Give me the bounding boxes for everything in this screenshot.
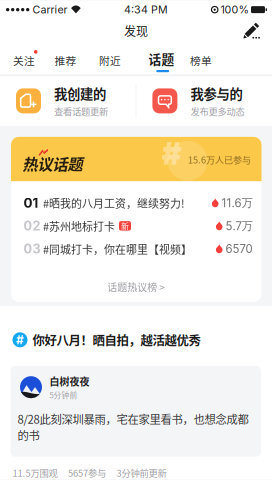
staticText: 100% (220, 3, 248, 16)
staticText: 查看话题更新 (54, 104, 108, 118)
staticText: 热议话题 (22, 152, 82, 174)
staticText: 5分钟前 (49, 389, 77, 400)
button[interactable]: 02 (11, 214, 261, 237)
staticText: 发布更多动态 (190, 104, 244, 118)
staticText: #晒我的八月工资，继续努力! (43, 195, 185, 211)
staticText: #苏州地标打卡 (43, 218, 115, 234)
staticText: 新 (121, 220, 129, 232)
button[interactable]: 01 (11, 191, 261, 214)
staticText: #同城打卡，你在哪里【视频】 (43, 241, 192, 257)
staticText: 8/28此刻深圳暴雨，宅在家里看书，也想念成都的书 (17, 410, 248, 443)
button[interactable]: 我参与的 (136, 76, 272, 126)
staticText: 发现 (124, 22, 148, 39)
button[interactable]: 附近 (98, 50, 124, 72)
button[interactable]: # (0, 331, 272, 349)
staticText: 推荐 (54, 52, 76, 68)
staticText: 11.5万围观 (12, 466, 57, 479)
button[interactable]: 推荐 (53, 50, 80, 72)
staticText: 01 (23, 195, 38, 211)
button[interactable]: 我创建的 (0, 76, 136, 126)
staticText: 6570 (225, 242, 252, 256)
staticText: 11.6万 (221, 196, 252, 210)
button[interactable]: 话题 (147, 47, 178, 72)
staticText: 5.7万 (225, 219, 252, 233)
button[interactable]: Compose (237, 19, 267, 43)
staticText: 我创建的 (54, 84, 106, 103)
staticText: 你好八月！晒自拍，越活越优秀 (32, 331, 200, 349)
staticText: Carrier (32, 3, 67, 16)
staticText: 5657参与 (68, 466, 106, 479)
staticText: 3分钟前更新 (116, 466, 166, 479)
staticText: 15.6万人已参与 (188, 153, 251, 166)
staticText: # (161, 135, 181, 172)
staticText: 关注 (13, 52, 35, 68)
staticText: 榜单 (190, 52, 212, 68)
staticText: 白树夜夜 (49, 374, 89, 388)
staticText: 我参与的 (190, 84, 242, 103)
staticText: # (16, 333, 24, 347)
button[interactable]: 话题热议榜 > (11, 280, 261, 293)
button[interactable]: 03 (11, 237, 261, 260)
staticText: 附近 (99, 52, 121, 68)
staticText: 03 (23, 241, 40, 256)
staticText: 02 (23, 218, 40, 233)
staticText: 话题 (148, 50, 174, 68)
button[interactable]: 榜单 (189, 50, 215, 72)
staticText: 4:34 PM (124, 3, 168, 16)
button[interactable]: 关注 (12, 50, 38, 72)
staticText: 话题热议榜 > (107, 280, 165, 294)
